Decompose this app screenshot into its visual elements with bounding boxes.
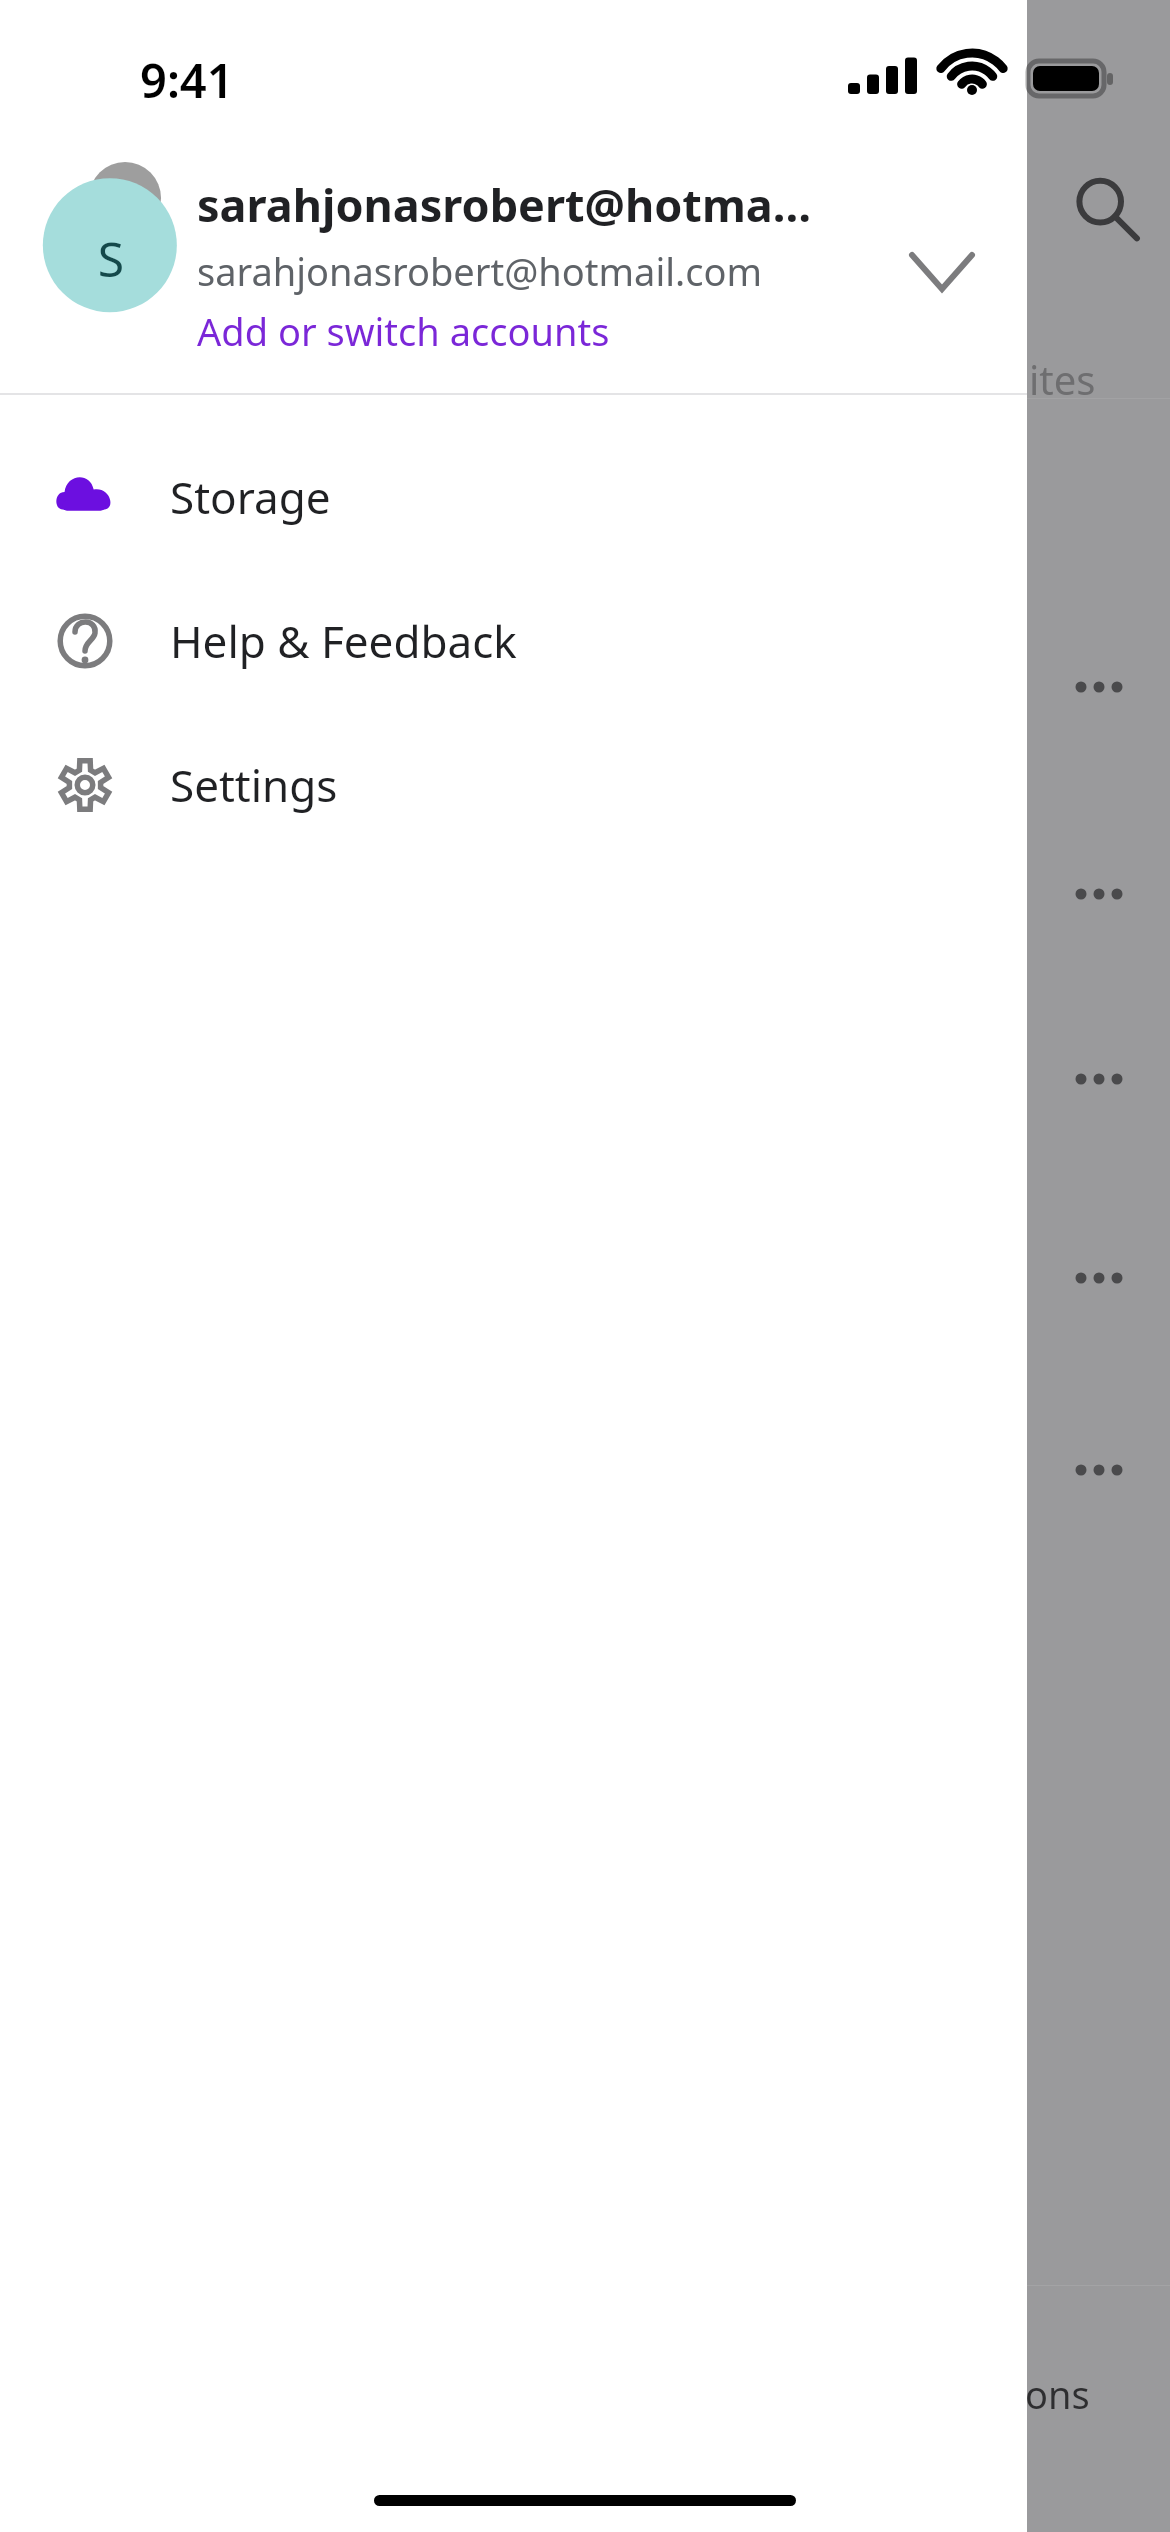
staticText: ons <box>1025 2368 1090 2420</box>
staticText: Settings <box>170 755 338 815</box>
button[interactable]: Add or switch accounts <box>197 305 610 357</box>
button[interactable]: Settings <box>0 713 1027 857</box>
button[interactable]: More options <box>1063 1434 1135 1506</box>
staticText: 9:41 <box>140 48 234 112</box>
button[interactable]: Help & Feedback <box>0 569 1027 713</box>
staticText: sarahjonasrobert@hotma… <box>197 174 812 235</box>
button[interactable]: More options <box>1063 1043 1135 1115</box>
button[interactable]: More options <box>1063 1242 1135 1314</box>
staticText: S <box>85 226 137 291</box>
staticText: Storage <box>170 467 331 527</box>
button[interactable]: Expand account list <box>888 218 996 326</box>
button[interactable]: Search <box>1065 168 1145 248</box>
button[interactable]: More options <box>1063 858 1135 930</box>
staticText: Help & Feedback <box>170 611 517 671</box>
button[interactable]: S <box>0 150 1027 365</box>
staticText: sarahjonasrobert@hotmail.com <box>197 245 762 297</box>
button[interactable]: Storage <box>0 425 1027 569</box>
staticText: ites <box>1029 352 1096 406</box>
button[interactable]: More options <box>1063 651 1135 723</box>
